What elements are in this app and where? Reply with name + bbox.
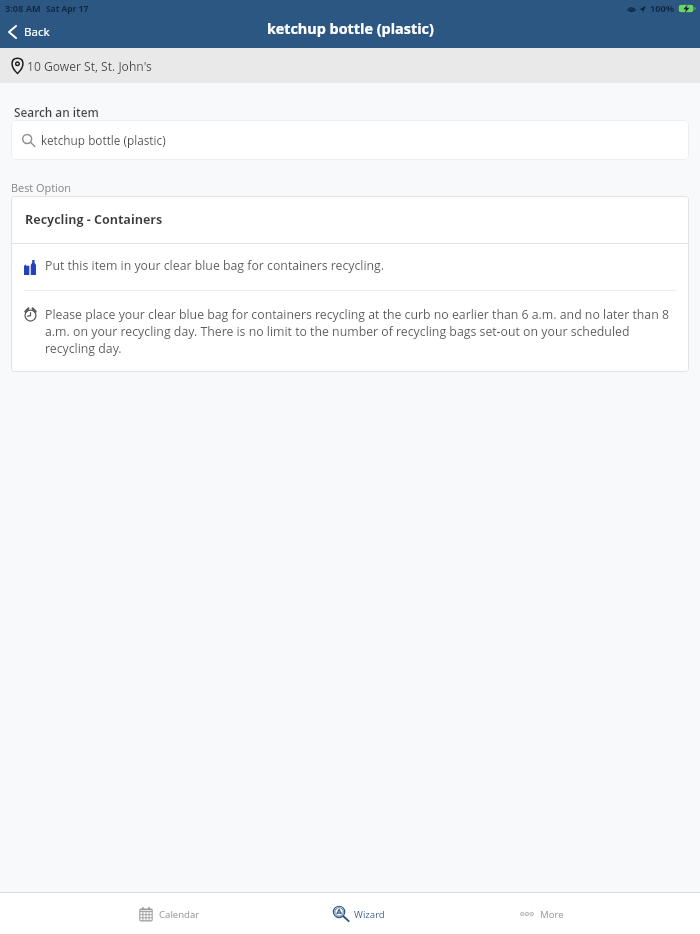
button[interactable]: Wizard xyxy=(323,898,395,930)
button[interactable]: ketchup bottle (plastic) xyxy=(11,120,689,160)
button[interactable]: More xyxy=(510,899,574,929)
staticText: ketchup bottle (plastic) xyxy=(267,19,434,39)
staticText: Please place your clear blue bag for con… xyxy=(45,306,675,357)
staticText: Back xyxy=(24,24,50,40)
button[interactable]: Calendar xyxy=(129,899,210,929)
staticText: ketchup bottle (plastic) xyxy=(41,132,166,148)
staticText: 3:08 AM xyxy=(5,2,41,15)
staticText: Put this item in your clear blue bag for… xyxy=(45,257,385,274)
staticText: 100% xyxy=(650,2,675,15)
staticText: Wizard xyxy=(354,908,385,921)
staticText: Recycling - Containers xyxy=(25,211,163,228)
button[interactable]: Back xyxy=(0,19,62,45)
staticText: Search an item xyxy=(14,104,99,120)
staticText: 10 Gower St, St. John's xyxy=(27,58,152,74)
staticText: Best Option xyxy=(11,180,72,195)
staticText: Calendar xyxy=(159,908,200,921)
staticText: Sat Apr 17 xyxy=(46,3,89,14)
staticText: More xyxy=(540,908,564,921)
